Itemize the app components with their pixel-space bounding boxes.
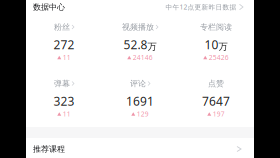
button[interactable]: 弹幕 bbox=[26, 70, 102, 127]
staticText: 粉丝 bbox=[54, 22, 70, 32]
staticText: 24146 bbox=[133, 53, 153, 62]
staticText: 万 bbox=[218, 41, 227, 52]
staticText: 1691 bbox=[126, 93, 154, 109]
staticText: 272 bbox=[53, 36, 74, 52]
staticText: 推荐课程 bbox=[33, 144, 65, 154]
button[interactable]: 视频播放 bbox=[102, 14, 178, 70]
staticText: 25426 bbox=[209, 53, 229, 62]
staticText: 视频播放 bbox=[122, 22, 154, 32]
staticText: 专栏阅读 bbox=[200, 22, 232, 32]
staticText: 7647 bbox=[202, 93, 230, 109]
staticText: 中午12点更新昨日数据 bbox=[165, 3, 236, 11]
staticText: 10 bbox=[204, 36, 218, 52]
button[interactable]: 粉丝 bbox=[26, 14, 102, 70]
button[interactable]: 点赞 bbox=[178, 70, 254, 127]
button[interactable]: 中午12点更新昨日数据 bbox=[165, 3, 243, 11]
button[interactable]: 专栏阅读 bbox=[178, 14, 254, 70]
button[interactable]: 评论 bbox=[102, 70, 178, 127]
staticText: 52.8 bbox=[123, 36, 147, 52]
staticText: 197 bbox=[213, 110, 225, 118]
staticText: 11 bbox=[63, 110, 71, 118]
staticText: 11 bbox=[63, 53, 71, 62]
staticText: 万 bbox=[147, 41, 156, 52]
staticText: 评论 bbox=[130, 79, 146, 88]
button[interactable]: 推荐课程 bbox=[26, 138, 254, 158]
staticText: 数据中心 bbox=[33, 2, 65, 12]
staticText: 323 bbox=[53, 93, 74, 109]
staticText: 点赞 bbox=[208, 79, 224, 88]
staticText: 129 bbox=[137, 110, 149, 118]
staticText: 弹幕 bbox=[54, 79, 70, 88]
